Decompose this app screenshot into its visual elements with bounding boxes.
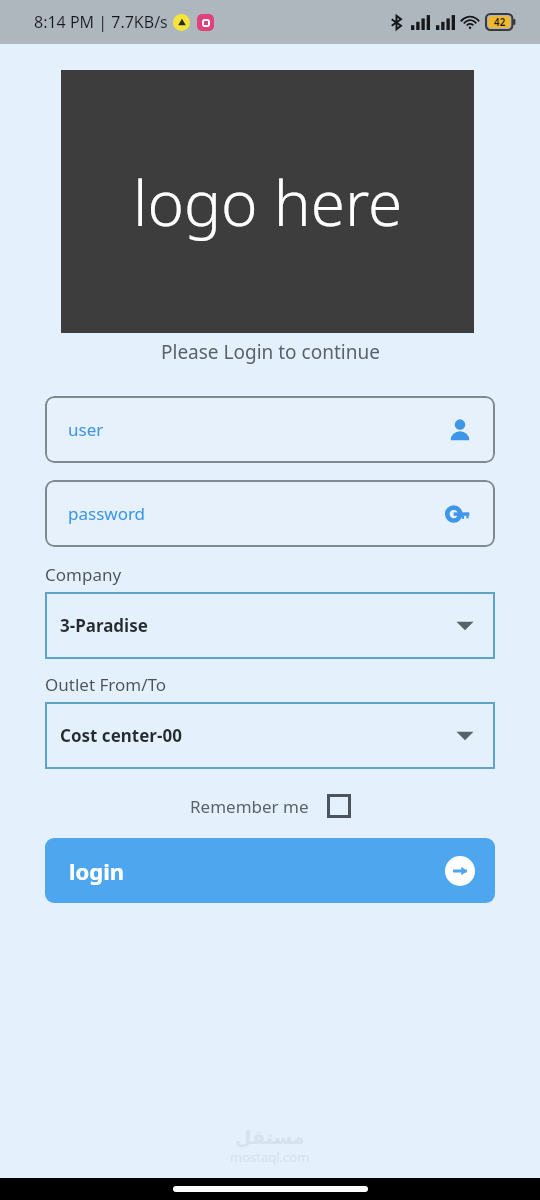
staticText: mostaql.com [230, 1148, 310, 1166]
button[interactable]: Remember me [0, 794, 540, 818]
other: Open dropdown [455, 616, 475, 636]
staticText: Remember me [190, 795, 309, 818]
button[interactable]: user [45, 396, 495, 463]
staticText: 42 [494, 15, 506, 29]
staticText: 3-Paradise [60, 614, 455, 637]
staticText: Outlet From/To [45, 673, 167, 696]
button[interactable]: 3-Paradise [45, 592, 495, 659]
staticText: password [68, 502, 445, 525]
other: Open dropdown [455, 726, 475, 746]
staticText: user [68, 418, 445, 441]
staticText: Cost center-00 [60, 724, 455, 747]
staticText: مستقل [235, 1126, 305, 1148]
other: password [445, 499, 475, 529]
button[interactable]: password [45, 480, 495, 547]
other: user [445, 415, 475, 445]
staticText: login [69, 856, 125, 886]
staticText: Please Login to continue [161, 339, 380, 365]
staticText: logo here [133, 160, 403, 244]
button[interactable]: Cost center-00 [45, 702, 495, 769]
button[interactable]: login [45, 838, 495, 903]
staticText: 8:14 PM | 7.7KB/s [34, 11, 168, 33]
staticText: Company [45, 563, 122, 586]
